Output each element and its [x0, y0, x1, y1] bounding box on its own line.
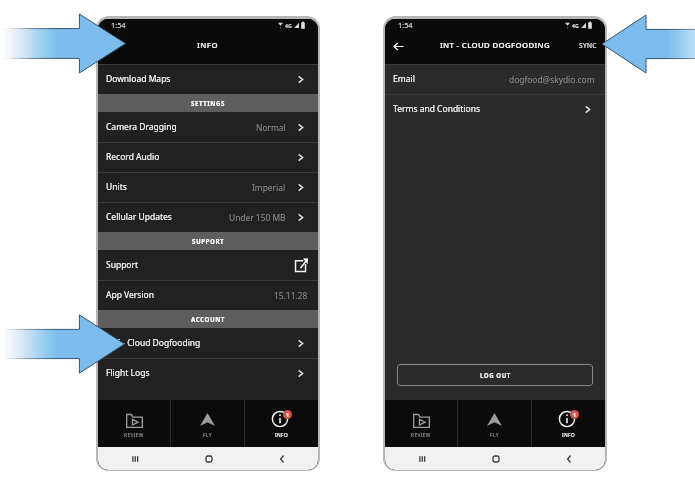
button[interactable]: Download Maps [98, 64, 318, 94]
button[interactable]: Recent apps [98, 447, 172, 470]
staticText: LOG OUT [480, 371, 511, 379]
button[interactable]: Home [172, 447, 245, 470]
staticText: Terms and Conditions [393, 103, 481, 115]
button[interactable]: App Version [98, 280, 318, 310]
staticText: 1:54 [111, 20, 126, 30]
staticText: Units [106, 181, 127, 193]
button[interactable]: FLY [458, 400, 531, 447]
button[interactable]: Units [98, 172, 318, 202]
button[interactable]: 1 [245, 400, 318, 447]
staticText: 1:54 [398, 20, 413, 30]
staticText: Normal [256, 122, 286, 133]
button[interactable]: INT - Cloud Dogfooding [98, 328, 318, 358]
button[interactable]: Support [98, 250, 318, 280]
staticText: 4G [285, 22, 292, 29]
staticText: INT - CLOUD DOGFOODING [440, 40, 551, 51]
staticText: 4G [572, 22, 579, 29]
staticText: Under 150 MB [229, 212, 286, 223]
button[interactable]: REVIEW [385, 400, 457, 447]
staticText: App Version [106, 289, 154, 301]
staticText: Email [393, 73, 415, 85]
button[interactable]: Camera Dragging [98, 112, 318, 142]
button[interactable]: REVIEW [98, 400, 170, 447]
staticText: INFO [562, 432, 576, 439]
staticText: Cellular Updates [106, 211, 172, 223]
staticText: SETTINGS [191, 99, 225, 107]
button[interactable]: 1 [532, 400, 605, 447]
staticText: 1 [573, 411, 576, 418]
staticText: REVIEW [124, 432, 144, 439]
button[interactable]: Back [532, 447, 605, 470]
button[interactable]: Back [385, 33, 411, 59]
button[interactable]: Record Audio [98, 142, 318, 172]
staticText: SYNC [579, 41, 597, 50]
staticText: Flight Logs [106, 367, 150, 379]
button[interactable]: FLY [171, 400, 244, 447]
button[interactable]: Back [245, 447, 318, 470]
button[interactable]: LOG OUT [397, 364, 593, 386]
staticText: Support [106, 259, 139, 271]
staticText: SUPPORT [192, 237, 225, 245]
staticText: INT - Cloud Dogfooding [106, 337, 201, 349]
button[interactable]: Flight Logs [98, 358, 318, 388]
button[interactable]: SYNC [571, 31, 605, 64]
button[interactable]: Recent apps [385, 447, 459, 470]
staticText: 15.11.28 [274, 290, 308, 301]
staticText: Camera Dragging [106, 121, 177, 133]
staticText: dogfood@skydio.com [509, 74, 595, 85]
button[interactable]: Terms and Conditions [385, 94, 605, 124]
staticText: FLY [490, 432, 499, 439]
staticText: Download Maps [106, 73, 171, 85]
staticText: 1 [286, 411, 289, 418]
button[interactable]: Cellular Updates [98, 202, 318, 232]
staticText: FLY [203, 432, 212, 439]
button[interactable]: Home [459, 447, 532, 470]
staticText: Imperial [252, 182, 286, 193]
staticText: Record Audio [106, 151, 160, 163]
button[interactable]: Email [385, 64, 605, 94]
staticText: ACCOUNT [191, 315, 225, 323]
staticText: INFO [275, 432, 289, 439]
staticText: REVIEW [411, 432, 431, 439]
staticText: INFO [197, 40, 219, 51]
